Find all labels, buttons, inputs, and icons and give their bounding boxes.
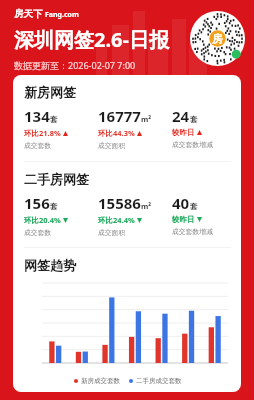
button[interactable]: 房天下 xyxy=(14,8,79,20)
staticText: 二手房成交套数 xyxy=(136,377,182,385)
staticText: 房 xyxy=(212,32,223,46)
staticText: 套 xyxy=(50,202,58,211)
staticText: 环比20.4% xyxy=(24,215,61,225)
staticText: 环比44.3% xyxy=(98,128,135,138)
staticText: 环比24.4% xyxy=(98,215,135,225)
staticText: m² xyxy=(141,201,152,211)
staticText: 成交套数增减 xyxy=(172,140,213,149)
button[interactable]: 134 xyxy=(24,106,98,150)
staticText: 数据更新至：2026-02-07 7:00 xyxy=(14,59,136,71)
staticText: 成交套数 xyxy=(24,141,52,150)
staticText: 较昨日 xyxy=(172,128,195,137)
staticText: 环比21.8% xyxy=(24,128,61,138)
staticText: m² xyxy=(141,114,152,124)
staticText: 成交套数增减 xyxy=(172,227,213,236)
staticText: 15586 xyxy=(98,193,141,213)
staticText: 成交面积 xyxy=(98,141,126,150)
staticText: 房天下 xyxy=(14,8,43,20)
staticText: 成交套数 xyxy=(24,228,52,237)
button[interactable]: 网签趋势 xyxy=(24,257,76,273)
staticText: 24 xyxy=(172,106,190,126)
staticText: 套 xyxy=(190,202,198,211)
button[interactable]: 156 xyxy=(24,193,98,237)
button[interactable]: 16777 xyxy=(98,106,172,150)
button[interactable]: 二手房成交套数 xyxy=(129,377,182,385)
staticText: 134 xyxy=(24,106,50,126)
staticText: 深圳网签2.6-日报 xyxy=(14,26,169,53)
button[interactable]: 二手房网签 xyxy=(24,171,89,187)
button[interactable]: 新房网签 xyxy=(24,84,76,100)
staticText: 较昨日 xyxy=(172,215,195,224)
staticText: 成交面积 xyxy=(98,228,126,237)
staticText: Fang.com xyxy=(45,10,79,20)
staticText: 16777 xyxy=(98,106,141,126)
staticText: 156 xyxy=(24,193,50,213)
staticText: 套 xyxy=(190,115,198,124)
button[interactable]: 40 xyxy=(172,193,231,236)
button[interactable]: 15586 xyxy=(98,193,172,237)
button[interactable]: 24 xyxy=(172,106,231,149)
button[interactable]: 扫码关注房天下公众号 xyxy=(190,11,245,66)
staticText: 新房成交套数 xyxy=(81,377,120,385)
staticText: 40 xyxy=(172,193,190,213)
button[interactable]: 新房成交套数 xyxy=(74,377,120,385)
staticText: 套 xyxy=(50,115,58,124)
